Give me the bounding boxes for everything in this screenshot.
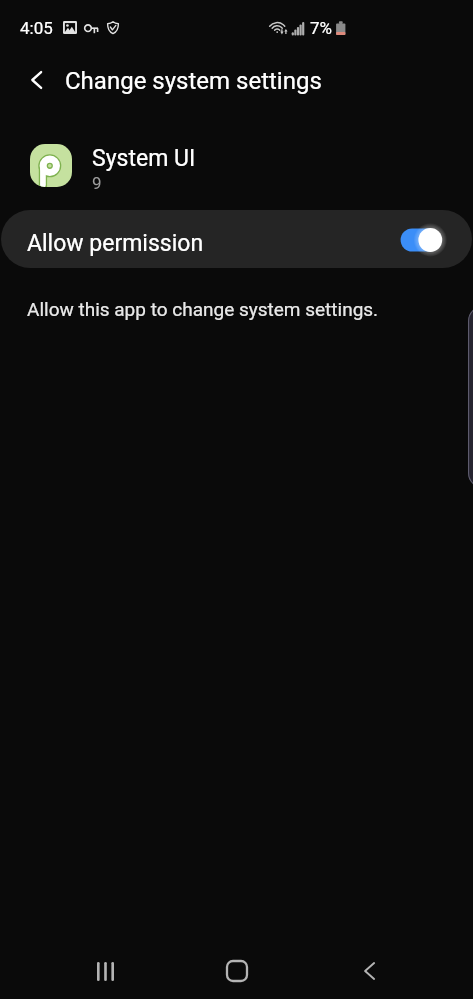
button[interactable]: Recent apps (70, 936, 140, 999)
staticText: Allow this app to change system settings… (27, 298, 379, 320)
staticText: Change system settings (65, 67, 322, 95)
button[interactable]: Home (202, 936, 272, 999)
staticText: 7% (310, 18, 333, 38)
staticText: System UI (92, 145, 196, 172)
button[interactable]: Navigate up (8, 52, 64, 108)
staticText: 9 (92, 173, 102, 193)
staticText: 4:05 (20, 18, 53, 38)
button[interactable]: Allow permission (1, 210, 472, 268)
staticText: Allow permission (27, 230, 204, 257)
button[interactable]: Back (334, 936, 404, 999)
